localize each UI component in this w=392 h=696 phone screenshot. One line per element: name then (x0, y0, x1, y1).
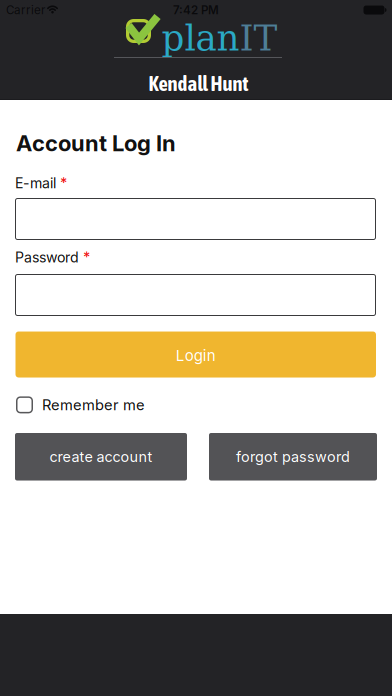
staticText: * (60, 174, 67, 192)
staticText: forgot password (236, 448, 350, 465)
staticText: E-mail (15, 174, 56, 192)
staticText: 7:42 PM (173, 3, 219, 17)
staticText: Password (15, 249, 79, 266)
staticText: plan (161, 17, 239, 59)
staticText: Login (176, 346, 216, 365)
staticText: Account Log In (16, 130, 176, 157)
staticText: create account (49, 448, 152, 465)
staticText: Remember me (42, 396, 145, 414)
button[interactable]: Login (15, 331, 376, 377)
staticText: Carrier (6, 3, 45, 17)
staticText: IT (239, 17, 277, 59)
button[interactable]: forgot password (209, 433, 377, 480)
button[interactable]: Remember me (16, 396, 145, 414)
button[interactable]: create account (15, 433, 187, 480)
button[interactable] (15, 198, 376, 240)
button[interactable] (15, 274, 376, 316)
staticText: Kendall Hunt (148, 72, 248, 95)
staticText: * (83, 249, 90, 266)
